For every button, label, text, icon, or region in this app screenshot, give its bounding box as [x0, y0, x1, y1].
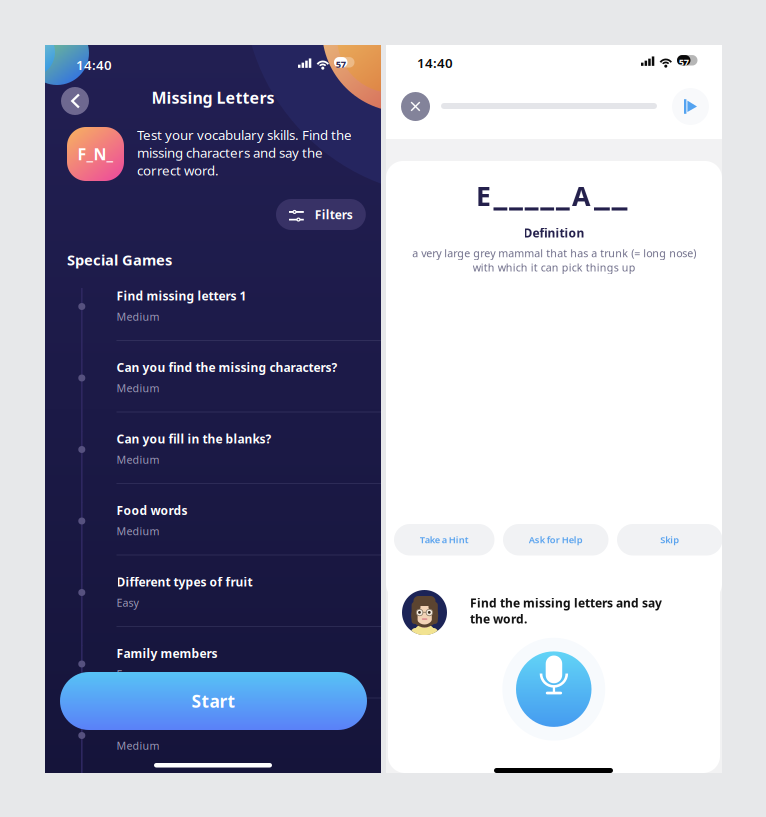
staticText: E [476, 178, 491, 213]
button[interactable]: Play [672, 88, 709, 125]
staticText: F_N_ [77, 143, 113, 165]
button[interactable]: Take a Hint [394, 524, 494, 555]
button[interactable]: Can you find the missing characters? [81, 359, 387, 431]
staticText: Ask for Help [529, 534, 583, 546]
staticText: Family members [116, 645, 217, 661]
button[interactable]: Different types of fruit [81, 574, 387, 645]
staticText: Find the missing letters and say the wor… [470, 595, 662, 627]
staticText: Start [191, 689, 235, 712]
staticText: Medium [116, 381, 159, 395]
button[interactable]: Can you fill in the blanks? [81, 431, 387, 502]
staticText: Take a Hint [420, 534, 469, 546]
staticText: Find missing letters 1 [116, 288, 246, 304]
button[interactable]: Skip [617, 524, 722, 555]
staticText: a very large grey mammal that has a trun… [412, 246, 696, 274]
staticText: Test your vocabulary skills. Find the mi… [137, 126, 352, 179]
staticText: Can you find the missing characters? [116, 359, 337, 375]
staticText: Missing Letters [151, 87, 274, 108]
button[interactable]: Find missing letters 1 [81, 288, 387, 359]
staticText: Definition [523, 225, 584, 241]
button[interactable]: Family members [81, 645, 387, 717]
staticText: Different types of fruit [116, 574, 252, 590]
button[interactable]: Food words [81, 502, 387, 574]
staticText: Medium [116, 738, 159, 753]
staticText: Special Games [67, 250, 172, 269]
staticText: 14:40 [76, 56, 112, 74]
button[interactable]: Ask for Help [503, 524, 608, 555]
button[interactable]: Close [401, 92, 430, 121]
staticText: Can you fill in the blanks? [116, 431, 271, 447]
staticText: Skip [660, 534, 679, 546]
staticText: Easy [116, 667, 138, 681]
button[interactable]: Back [61, 87, 89, 115]
staticText: Easy [116, 595, 138, 610]
staticText: 57 [679, 56, 689, 68]
button[interactable]: Start [60, 672, 367, 730]
staticText: Medium [116, 524, 159, 538]
staticText: Animals [116, 717, 165, 733]
button[interactable]: Filters [276, 199, 366, 230]
staticText: 14:40 [417, 54, 453, 72]
staticText: Food words [116, 502, 187, 518]
button[interactable]: Animals [81, 717, 387, 788]
staticText: Medium [116, 452, 159, 467]
staticText: Medium [116, 309, 159, 324]
staticText: 57 [336, 58, 346, 70]
staticText: Filters [315, 206, 353, 222]
staticText: A [572, 178, 590, 213]
